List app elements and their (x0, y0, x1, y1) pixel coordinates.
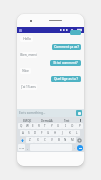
staticText: EMOJI (23, 119, 32, 123)
button[interactable]: N (62, 137, 69, 143)
button[interactable]: Q (18, 123, 24, 129)
button[interactable]: I (62, 123, 69, 129)
button[interactable]: Z (26, 137, 34, 143)
button[interactable]: ?123 (18, 144, 25, 151)
button[interactable]: R (36, 123, 42, 129)
staticText: H (54, 131, 57, 135)
staticText: Quel âge as tu ? (54, 77, 78, 81)
staticText: Q (20, 124, 23, 128)
staticText: C (44, 138, 46, 142)
staticText: O (71, 124, 74, 128)
staticText: J (62, 131, 63, 135)
button[interactable]: K (66, 130, 73, 136)
button[interactable]: Ecris something... (19, 111, 76, 115)
staticText: S (28, 131, 30, 135)
button[interactable]: Y (48, 123, 55, 129)
button[interactable]: X (34, 137, 41, 143)
button[interactable] (70, 30, 81, 35)
staticText: F (41, 131, 43, 135)
staticText: V (51, 138, 53, 142)
staticText: T (44, 124, 46, 128)
staticText: Et toi comment? (53, 61, 78, 65)
button[interactable]: J (59, 130, 66, 136)
staticText: P (79, 124, 81, 128)
staticText: B (58, 138, 60, 142)
button[interactable]: J'ai 15 ans (20, 84, 37, 90)
staticText: I (65, 124, 67, 128)
button[interactable]: A (20, 130, 26, 136)
staticText: K (69, 131, 71, 135)
button[interactable]: P (76, 123, 83, 129)
button[interactable]: , (26, 144, 29, 151)
button[interactable]: Nice (20, 68, 31, 74)
staticText: Comment ça va? (54, 45, 79, 49)
staticText: U (57, 124, 60, 128)
button[interactable]: S (26, 130, 32, 136)
button[interactable]: Test (57, 118, 77, 123)
button[interactable]: D (32, 130, 38, 136)
button[interactable]: EMOJI (18, 118, 37, 123)
button[interactable]: V (48, 137, 55, 143)
staticText: G (47, 131, 50, 135)
button[interactable]: Quel âge as tu ? (51, 76, 81, 82)
staticText: R (38, 124, 40, 128)
staticText: Z (29, 138, 31, 142)
staticText: DemoAA (41, 119, 53, 123)
staticText: L (76, 131, 78, 135)
staticText: . (74, 146, 75, 150)
staticText: Test (64, 119, 70, 123)
button[interactable]: Backspace (76, 137, 83, 143)
staticText: ?123 (19, 146, 25, 149)
staticText: D (34, 131, 37, 135)
button[interactable]: U (55, 123, 62, 129)
button[interactable]: M (69, 137, 76, 143)
button[interactable]: W (24, 123, 30, 129)
staticText: N (64, 138, 67, 142)
button[interactable]: Shift (18, 137, 26, 143)
button[interactable]: L (73, 130, 80, 136)
button[interactable]: Voice input (77, 118, 83, 123)
button[interactable]: G (45, 130, 52, 136)
button[interactable]: Hello (20, 36, 33, 42)
staticText: Ecris something... (19, 111, 46, 115)
staticText: Y (51, 124, 53, 128)
staticText: W (26, 124, 29, 128)
button[interactable]: O (69, 123, 76, 129)
button[interactable]: Et toi comment? (50, 60, 81, 66)
button[interactable]: Send (77, 145, 83, 151)
button[interactable]: C (41, 137, 48, 143)
button[interactable]: E (30, 123, 36, 129)
staticText: M (71, 138, 74, 142)
staticText: A (22, 131, 24, 135)
button[interactable]: Emoji (76, 110, 82, 116)
staticText: X (37, 138, 39, 142)
button[interactable]: . (73, 144, 76, 151)
button[interactable]: T (42, 123, 48, 129)
staticText: Hello (23, 37, 31, 41)
button[interactable]: H (52, 130, 59, 136)
button[interactable]: DemoAA (37, 118, 57, 123)
staticText: Nice (22, 69, 29, 73)
staticText: E (32, 124, 34, 128)
staticText: Bien, merci (20, 53, 37, 57)
staticText: J'ai 15 ans (21, 85, 36, 89)
button[interactable]: Comment ça va? (52, 44, 81, 50)
staticText: , (27, 146, 28, 150)
button[interactable]: F (38, 130, 45, 136)
button[interactable]: B (55, 137, 62, 143)
button[interactable]: Bien, merci (20, 52, 37, 58)
